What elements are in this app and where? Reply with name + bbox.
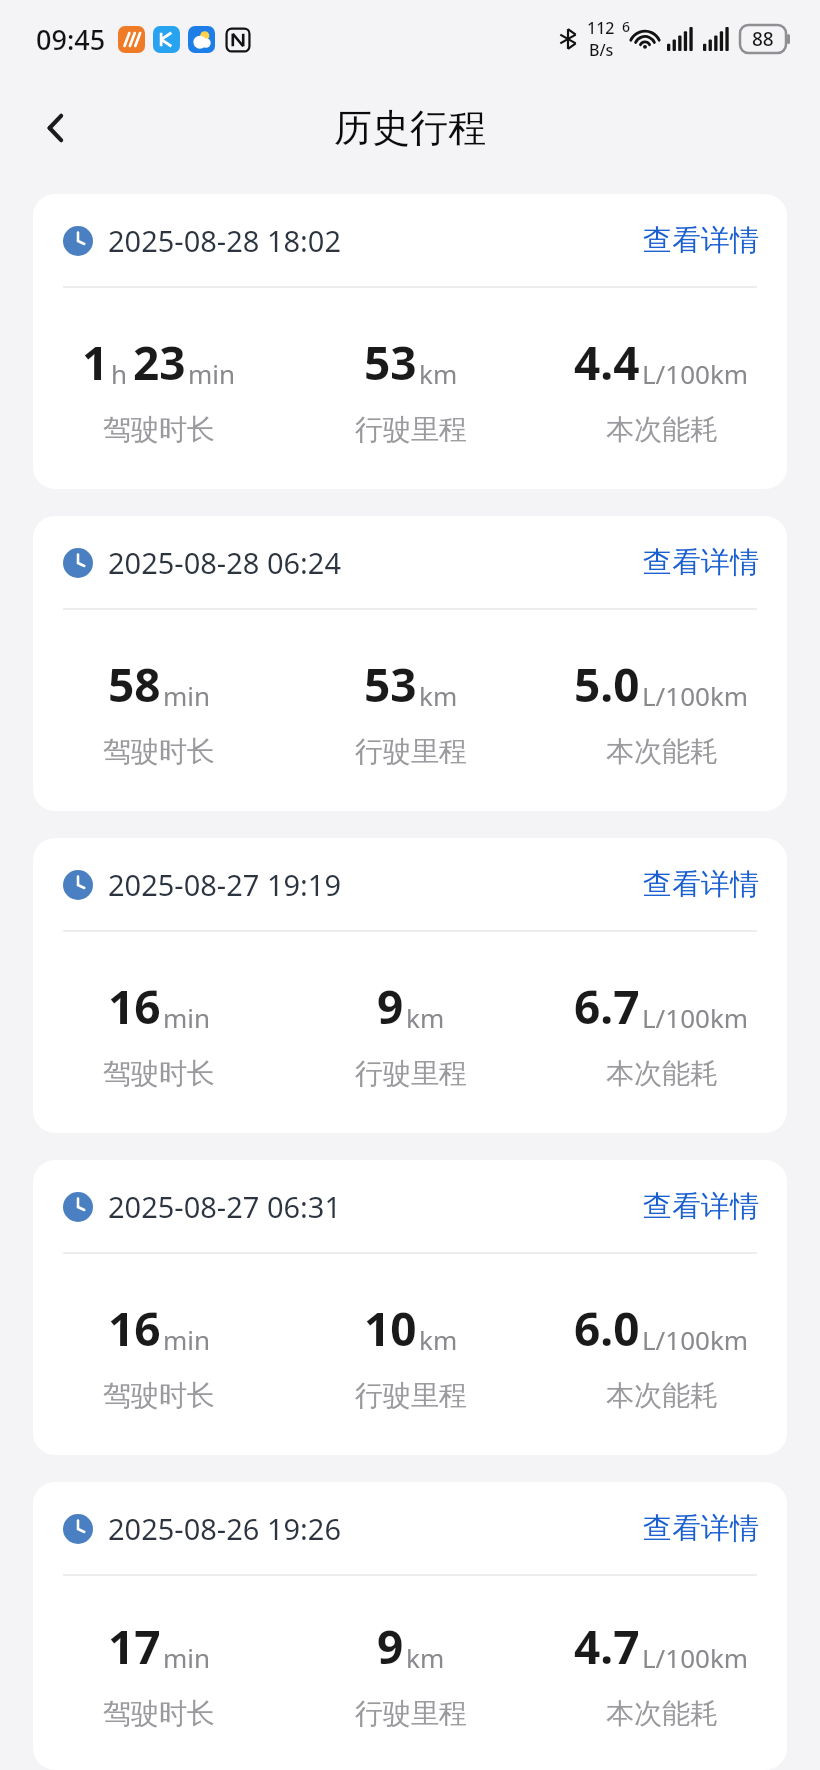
staticText: 2025-08-28 18:02 [108, 221, 342, 260]
staticText: 查看详情 [643, 222, 759, 259]
staticText: 查看详情 [643, 1510, 759, 1547]
staticText: 查看详情 [643, 866, 759, 903]
staticText: L/100km [642, 1640, 749, 1675]
staticText: 行驶里程 [355, 412, 467, 447]
staticText: 17 [108, 1615, 161, 1678]
button[interactable]: 2025-08-27 06:31 [33, 1160, 787, 1455]
staticText: km [419, 678, 458, 713]
staticText: L/100km [642, 1322, 749, 1357]
staticText: 10 [364, 1297, 417, 1360]
staticText: L/100km [642, 678, 749, 713]
staticText: 本次能耗 [606, 734, 718, 769]
staticText: 58 [108, 653, 161, 716]
staticText: 驾驶时长 [103, 412, 215, 447]
staticText: min [163, 678, 211, 713]
staticText: 行驶里程 [355, 1696, 467, 1731]
button[interactable]: 查看详情 [635, 858, 767, 911]
staticText: 53 [364, 653, 417, 716]
staticText: 6.0 [574, 1297, 640, 1360]
staticText: 驾驶时长 [103, 1378, 215, 1413]
staticText: 查看详情 [643, 1188, 759, 1225]
staticText: 本次能耗 [606, 1378, 718, 1413]
staticText: 1 [82, 331, 109, 394]
staticText: 2025-08-28 06:24 [108, 543, 342, 582]
staticText: 行驶里程 [355, 1056, 467, 1091]
staticText: km [406, 1640, 445, 1675]
button[interactable]: 查看详情 [635, 1180, 767, 1233]
staticText: 本次能耗 [606, 412, 718, 447]
staticText: 9 [377, 975, 404, 1038]
staticText: 88 [752, 26, 774, 52]
staticText: min [163, 1322, 211, 1357]
staticText: h [111, 356, 128, 391]
staticText: 53 [364, 331, 417, 394]
staticText: 4.7 [574, 1615, 640, 1678]
staticText: 6.7 [574, 975, 640, 1038]
staticText: 驾驶时长 [103, 1056, 215, 1091]
staticText: 2025-08-26 19:26 [108, 1509, 342, 1548]
staticText: 16 [108, 1297, 161, 1360]
button[interactable]: 2025-08-28 06:24 [33, 516, 787, 811]
staticText: 112 [587, 17, 615, 39]
staticText: B/s [589, 39, 614, 61]
button[interactable]: 查看详情 [635, 1502, 767, 1555]
staticText: km [419, 1322, 458, 1357]
staticText: 行驶里程 [355, 1378, 467, 1413]
button[interactable]: Back [24, 96, 88, 160]
staticText: 驾驶时长 [103, 734, 215, 769]
staticText: min [188, 356, 236, 391]
staticText: 本次能耗 [606, 1056, 718, 1091]
staticText: min [163, 1640, 211, 1675]
staticText: 2025-08-27 19:19 [108, 865, 342, 904]
staticText: km [406, 1000, 445, 1035]
button[interactable]: 2025-08-28 18:02 [33, 194, 787, 489]
staticText: 4.4 [574, 331, 640, 394]
staticText: 2025-08-27 06:31 [108, 1187, 342, 1226]
staticText: km [419, 356, 458, 391]
button[interactable]: 2025-08-26 19:26 [33, 1482, 787, 1770]
button[interactable]: 查看详情 [635, 214, 767, 267]
staticText: 09:45 [36, 21, 106, 58]
staticText: 本次能耗 [606, 1696, 718, 1731]
staticText: 查看详情 [643, 544, 759, 581]
button[interactable]: 查看详情 [635, 536, 767, 589]
staticText: 行驶里程 [355, 734, 467, 769]
staticText: 6 [622, 17, 631, 36]
staticText: 驾驶时长 [103, 1696, 215, 1731]
staticText: 5.0 [574, 653, 640, 716]
staticText: L/100km [642, 1000, 749, 1035]
staticText: 23 [133, 331, 186, 394]
staticText: L/100km [642, 356, 749, 391]
staticText: 9 [377, 1615, 404, 1678]
staticText: min [163, 1000, 211, 1035]
staticText: 历史行程 [334, 104, 486, 152]
button[interactable]: 2025-08-27 19:19 [33, 838, 787, 1133]
staticText: 16 [108, 975, 161, 1038]
